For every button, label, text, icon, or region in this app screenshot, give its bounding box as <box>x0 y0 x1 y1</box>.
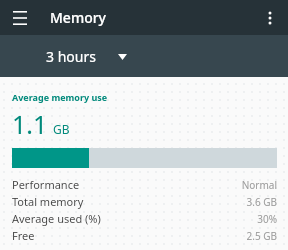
button[interactable]: 3 hours <box>46 47 127 66</box>
button[interactable]: Open navigation menu <box>8 6 32 30</box>
button[interactable]: Average used (%) <box>0 210 288 227</box>
staticText: GB <box>53 121 70 137</box>
staticText: Normal <box>241 178 277 192</box>
staticText: Free <box>12 228 35 243</box>
button[interactable]: Total memory <box>0 193 288 210</box>
staticText: Memory <box>50 8 107 27</box>
staticText: Total memory <box>12 194 84 209</box>
staticText: Average memory use <box>12 91 108 103</box>
button[interactable]: Performance <box>0 176 288 193</box>
button[interactable]: More options <box>258 6 282 30</box>
staticText: 30% <box>257 212 277 226</box>
staticText: 2.5 GB <box>246 229 277 243</box>
staticText: 3.6 GB <box>246 195 277 209</box>
staticText: 1.1 <box>12 107 48 141</box>
staticText: 3 hours <box>46 47 96 66</box>
staticText: Average used (%) <box>12 211 101 226</box>
button[interactable]: Free <box>0 227 288 244</box>
staticText: Performance <box>12 177 80 192</box>
